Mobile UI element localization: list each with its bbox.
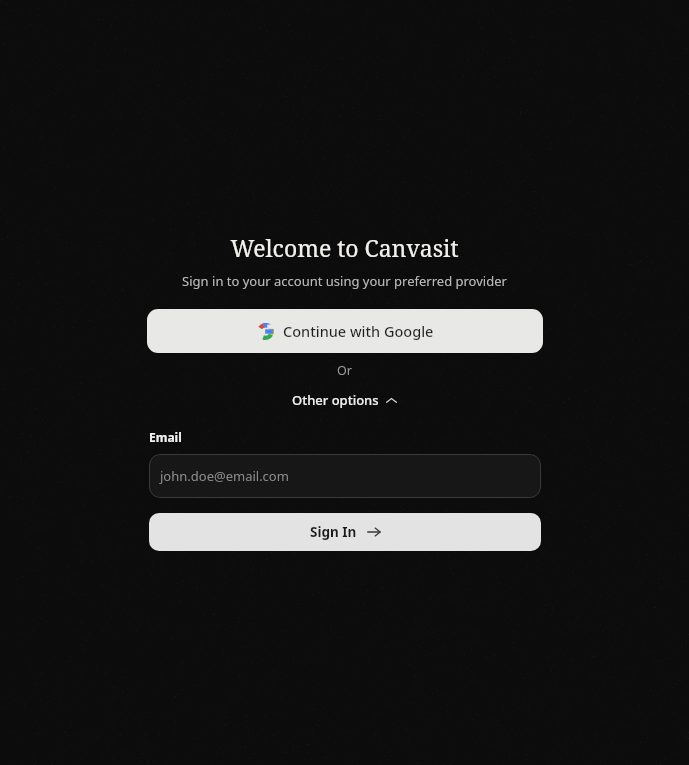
button[interactable]: Sign In <box>149 513 541 551</box>
staticText: Continue with Google <box>283 321 434 341</box>
staticText: Welcome to Canvasit <box>230 232 459 263</box>
staticText: Other options <box>292 391 379 409</box>
staticText: john.doe@email.com <box>160 467 289 485</box>
staticText: Or <box>337 362 352 379</box>
button[interactable]: Continue with Google <box>147 309 543 353</box>
staticText: Email <box>149 429 182 445</box>
button[interactable]: Other options <box>286 388 403 412</box>
staticText: Sign In <box>310 523 357 541</box>
button[interactable]: john.doe@email.com <box>149 454 541 498</box>
staticText: Sign in to your account using your prefe… <box>182 272 507 290</box>
